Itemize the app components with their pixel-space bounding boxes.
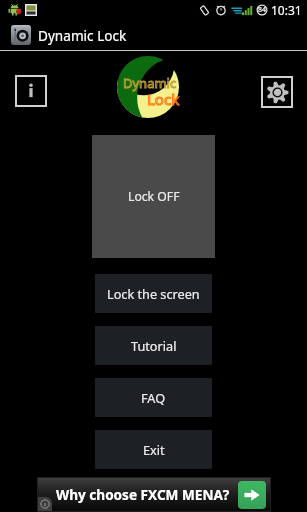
button[interactable]: Info: [15, 75, 47, 107]
staticText: Exit: [143, 441, 165, 458]
staticText: Lock: [147, 89, 180, 109]
button[interactable]: Tutorial: [95, 326, 212, 365]
staticText: Lock the screen: [107, 285, 200, 302]
staticText: 10:31: [271, 2, 302, 18]
staticText: Dynamic: [123, 74, 177, 92]
button[interactable]: Open advertisement: [238, 481, 266, 509]
staticText: 84: [258, 5, 267, 15]
button[interactable]: Settings: [261, 76, 293, 108]
button[interactable]: Lock OFF: [92, 135, 215, 258]
staticText: FAQ: [141, 389, 166, 406]
staticText: Lock OFF: [128, 188, 180, 205]
staticText: Tutorial: [131, 337, 177, 354]
button[interactable]: Exit: [95, 430, 212, 469]
button[interactable]: Lock the screen: [95, 274, 212, 313]
staticText: Dynamic Lock: [38, 26, 127, 45]
button[interactable]: FAQ: [95, 378, 212, 417]
staticText: Why choose FXCM MENA?: [56, 485, 230, 504]
button[interactable]: Why choose FXCM MENA?: [38, 478, 270, 511]
